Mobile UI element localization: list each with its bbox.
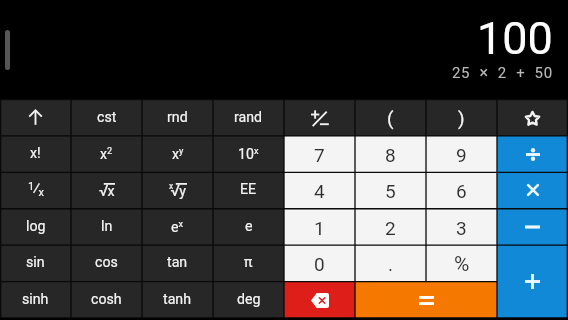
staticText: deg — [237, 291, 261, 308]
staticText: ( — [387, 107, 394, 129]
button[interactable]: ) — [426, 100, 497, 136]
button[interactable]: tan — [142, 245, 213, 281]
staticText: sinh — [22, 291, 49, 308]
button[interactable]: ln — [71, 209, 142, 245]
button[interactable]: 3 — [426, 209, 497, 245]
button[interactable]: e — [213, 209, 284, 245]
button[interactable]: x! — [0, 136, 71, 172]
staticText: xy — [172, 145, 184, 162]
button[interactable]: 9 — [426, 136, 497, 172]
button[interactable]: Divide — [497, 136, 568, 172]
button[interactable]: cos — [71, 245, 142, 281]
staticText: % — [454, 252, 470, 277]
button[interactable]: Minus — [497, 209, 568, 245]
button[interactable]: 6 — [426, 172, 497, 208]
button[interactable]: Scroll up — [0, 100, 71, 136]
staticText: rnd — [167, 109, 188, 126]
button[interactable]: 1⁄x — [0, 172, 71, 208]
staticText: tanh — [163, 291, 192, 308]
button[interactable]: cst — [71, 100, 142, 136]
button[interactable]: Plus minus — [284, 100, 355, 136]
staticText: 100 — [477, 12, 553, 65]
button[interactable]: rnd — [142, 100, 213, 136]
staticText: x! — [30, 145, 41, 162]
button[interactable]: Favorites — [497, 100, 568, 136]
staticText: rand — [234, 109, 263, 126]
button[interactable]: 4 — [284, 172, 355, 208]
button[interactable]: cosh — [71, 282, 142, 318]
staticText: . — [388, 253, 394, 275]
button[interactable]: x2 — [71, 136, 142, 172]
staticText: x2 — [100, 145, 113, 162]
button[interactable]: ( — [355, 100, 426, 136]
staticText: cos — [95, 254, 118, 271]
staticText: 1 — [314, 217, 325, 239]
staticText: 0 — [314, 253, 325, 275]
staticText: ) — [458, 107, 465, 129]
button[interactable]: π — [213, 245, 284, 281]
button[interactable]: rand — [213, 100, 284, 136]
button[interactable]: 7 — [284, 136, 355, 172]
staticText: 5 — [385, 180, 396, 202]
button[interactable]: log — [0, 209, 71, 245]
staticText: cosh — [91, 291, 122, 308]
button[interactable]: Multiply — [497, 172, 568, 208]
staticText: 8 — [385, 144, 396, 166]
button[interactable]: xy — [142, 136, 213, 172]
staticText: 9 — [456, 144, 467, 166]
staticText: 10x — [238, 145, 259, 162]
button[interactable]: tanh — [142, 282, 213, 318]
button[interactable]: deg — [213, 282, 284, 318]
staticText: EE — [240, 181, 257, 198]
button[interactable]: 2 — [355, 209, 426, 245]
button[interactable]: 0 — [284, 245, 355, 281]
button[interactable]: √x — [71, 172, 142, 208]
button[interactable]: EE — [213, 172, 284, 208]
button[interactable]: Plus — [497, 245, 568, 318]
button[interactable]: Backspace — [284, 282, 355, 318]
staticText: x√y — [169, 181, 186, 199]
staticText: sin — [26, 254, 45, 271]
staticText: 7 — [314, 144, 325, 166]
staticText: e — [245, 218, 253, 235]
button[interactable]: ex — [142, 209, 213, 245]
staticText: tan — [167, 254, 188, 271]
button[interactable]: sin — [0, 245, 71, 281]
button[interactable]: 10x — [213, 136, 284, 172]
staticText: π — [244, 254, 253, 271]
button[interactable]: x√y — [142, 172, 213, 208]
staticText: 1⁄x — [28, 179, 44, 199]
staticText: 25 × 2 + 50 — [452, 63, 553, 82]
button[interactable]: . — [355, 245, 426, 281]
staticText: 4 — [314, 180, 325, 202]
staticText: 2 — [385, 217, 396, 239]
button[interactable]: 1 — [284, 209, 355, 245]
button[interactable]: 8 — [355, 136, 426, 172]
button[interactable]: % — [426, 245, 497, 281]
staticText: √x — [99, 181, 115, 199]
staticText: 6 — [456, 180, 467, 202]
staticText: 3 — [456, 217, 467, 239]
staticText: cst — [97, 109, 117, 126]
button[interactable]: Equals — [355, 282, 497, 318]
staticText: ex — [171, 218, 184, 235]
button[interactable]: sinh — [0, 282, 71, 318]
staticText: log — [26, 218, 46, 235]
staticText: ln — [101, 218, 113, 235]
button[interactable]: 5 — [355, 172, 426, 208]
